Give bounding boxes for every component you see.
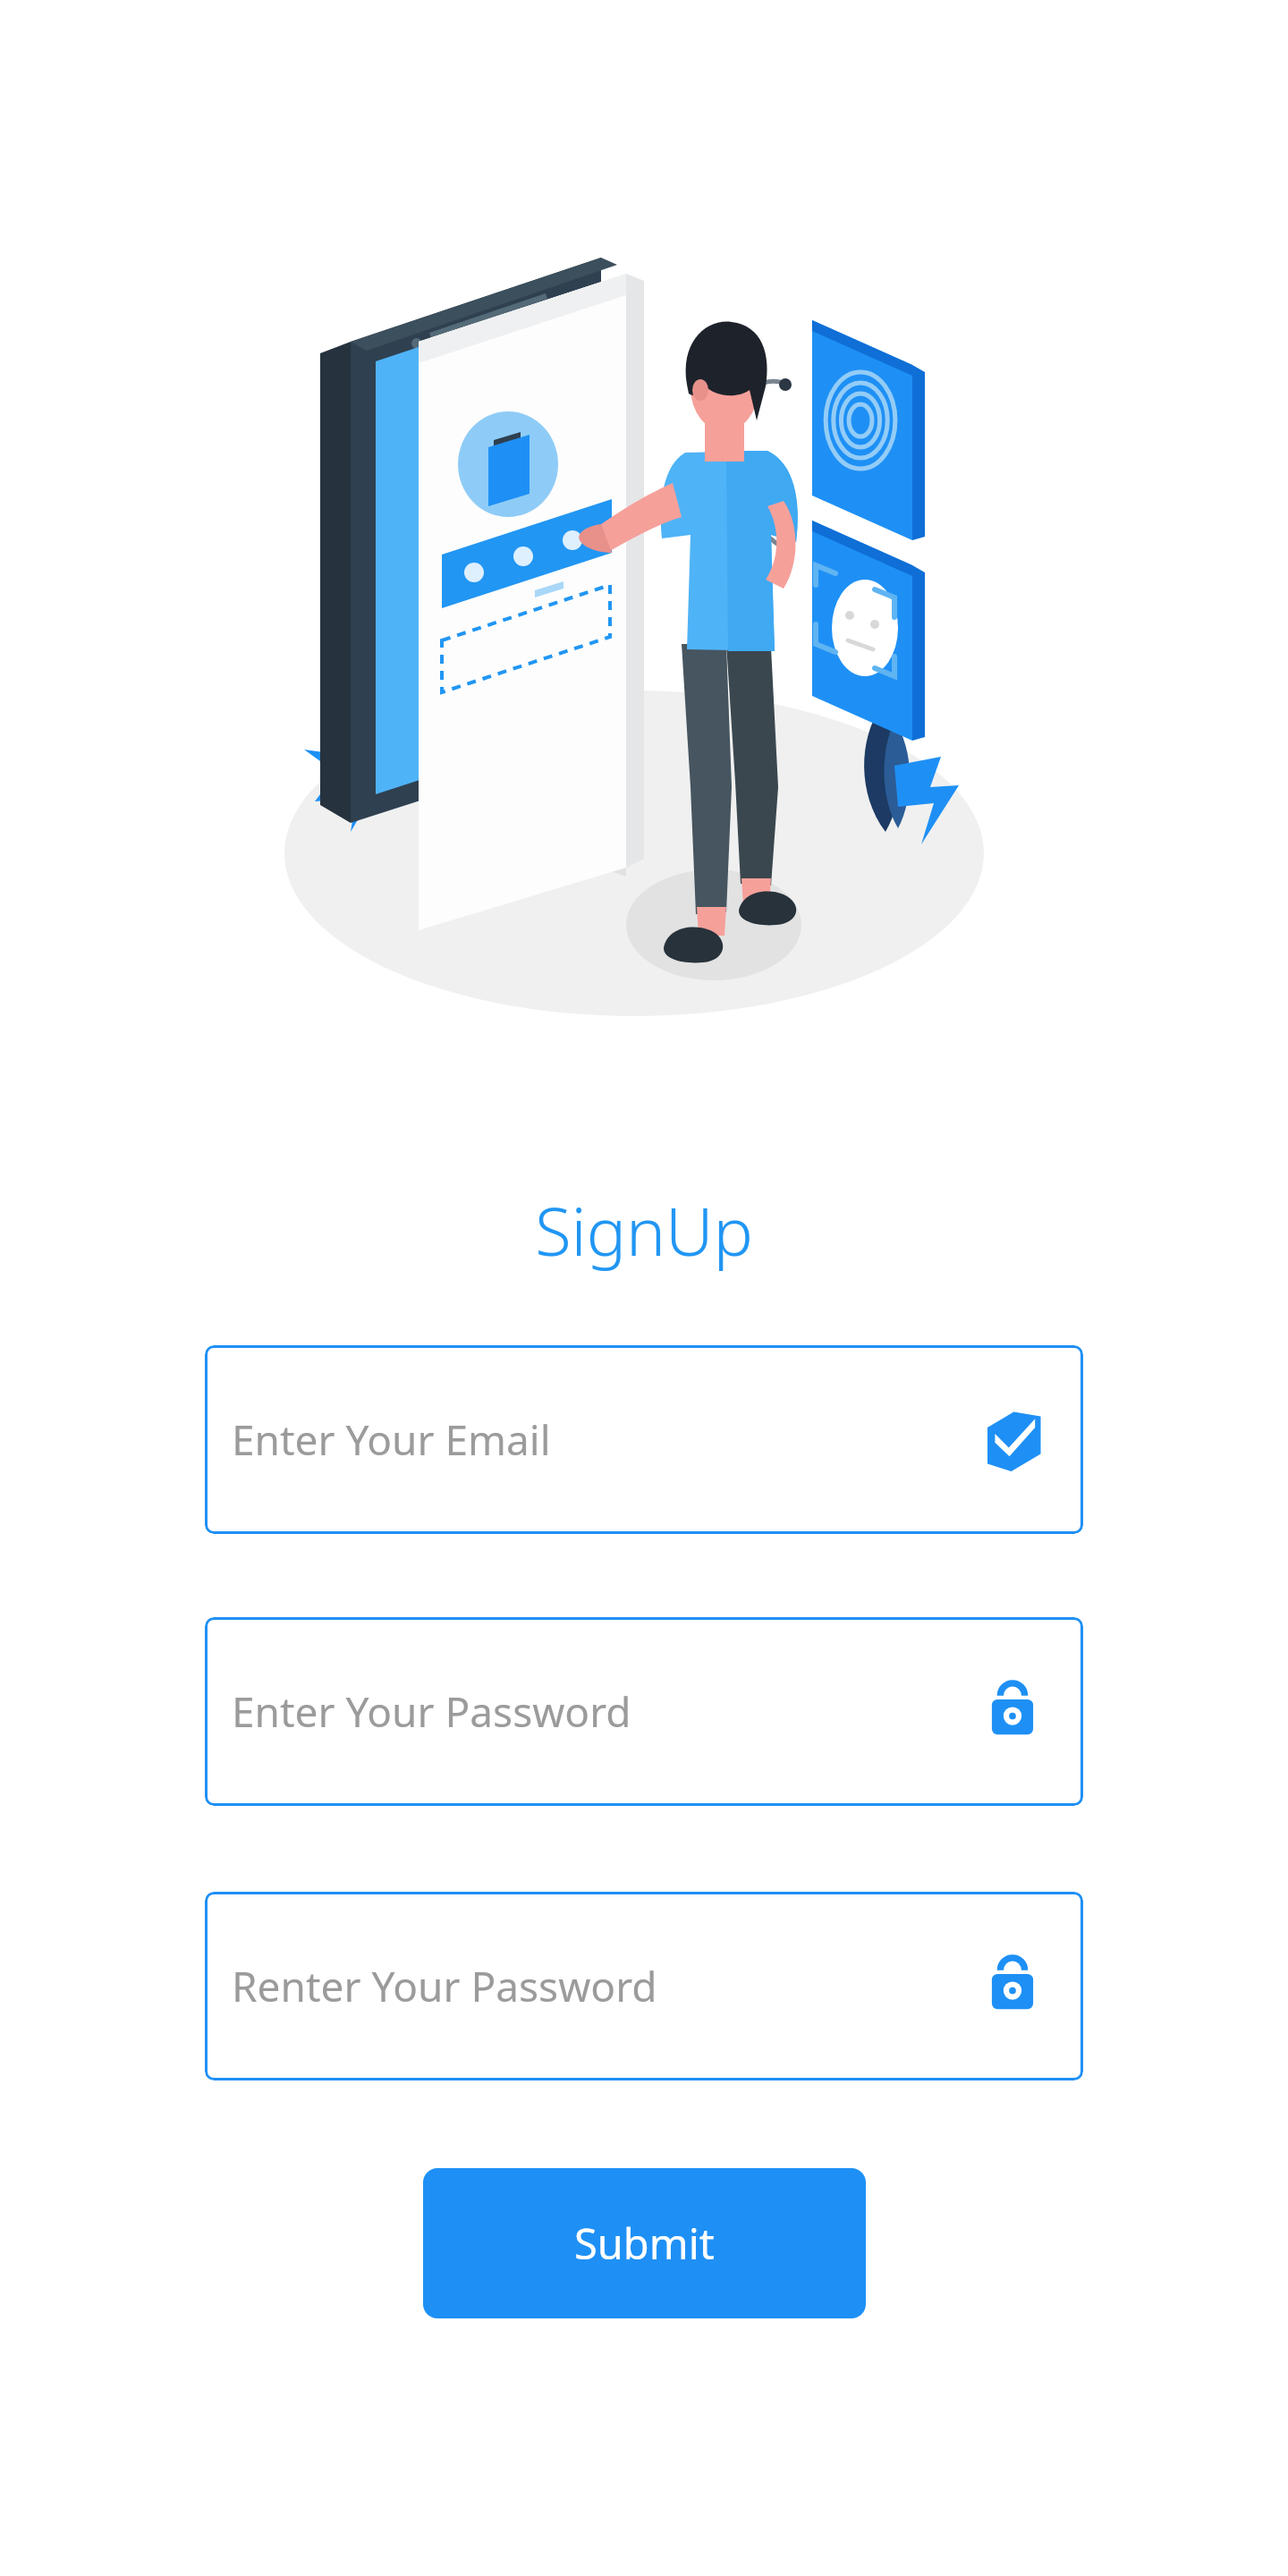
- button[interactable]: Enter Your Password: [205, 1617, 1083, 1806]
- button[interactable]: Renter Your Password: [205, 1892, 1083, 2080]
- staticText: SignUp: [535, 1185, 753, 1275]
- button[interactable]: Enter Your Email: [205, 1345, 1083, 1534]
- staticText: Enter Your Email: [232, 1411, 981, 1468]
- button[interactable]: Submit: [423, 2168, 866, 2318]
- staticText: Enter Your Password: [232, 1683, 981, 1740]
- staticText: Renter Your Password: [232, 1958, 981, 2014]
- staticText: Submit: [574, 2215, 715, 2272]
